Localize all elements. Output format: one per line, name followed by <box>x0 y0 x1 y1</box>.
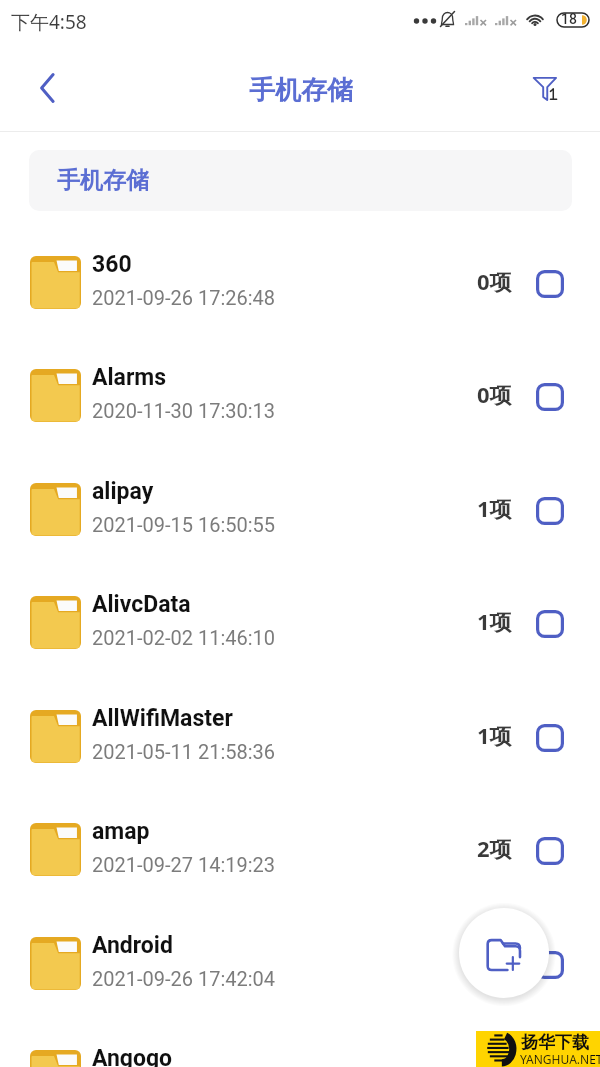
button[interactable]: Select folder <box>536 383 564 411</box>
staticText: 1项 <box>477 1060 512 1067</box>
staticText: 2021-02-02 11:46:10 <box>92 626 276 649</box>
staticText: YANGHUA.NET <box>520 1051 600 1067</box>
staticText: 2020-11-30 17:30:13 <box>92 399 276 422</box>
staticText: 2021-09-27 14:19:23 <box>92 853 276 876</box>
button[interactable]: Select folder <box>536 724 564 752</box>
button[interactable]: Alarms <box>0 341 600 454</box>
staticText: 2021-05-11 21:58:36 <box>92 740 276 763</box>
staticText: 0项 <box>477 266 512 296</box>
staticText: 扬华下载 <box>521 1032 589 1053</box>
button[interactable]: Select folder <box>536 837 564 865</box>
button[interactable]: Select folder <box>536 610 564 638</box>
staticText: Alarms <box>92 364 167 391</box>
staticText: Android <box>92 932 173 959</box>
staticText: 18 <box>561 11 577 27</box>
button[interactable]: alipay <box>0 455 600 568</box>
button[interactable]: AllWifiMaster <box>0 682 600 795</box>
staticText: 1项 <box>477 606 512 636</box>
staticText: 2021-09-26 17:26:48 <box>92 286 276 309</box>
staticText: Angogo <box>92 1045 173 1067</box>
staticText: amap <box>92 818 150 845</box>
button[interactable]: Back <box>23 63 73 113</box>
staticText: 2项 <box>477 833 512 863</box>
staticText: 0项 <box>477 379 512 409</box>
button[interactable]: AlivcData <box>0 568 600 681</box>
button[interactable]: Android <box>0 909 600 1022</box>
button[interactable]: Select folder <box>536 270 564 298</box>
staticText: 1项 <box>477 720 512 750</box>
staticText: AllWifiMaster <box>92 705 233 732</box>
staticText: 2021-09-15 16:50:55 <box>92 513 276 536</box>
staticText: 手机存储 <box>57 166 149 195</box>
staticText: 2021-09-26 17:42:04 <box>92 967 276 990</box>
button[interactable]: Select folder <box>536 951 564 979</box>
staticText: alipay <box>92 478 154 505</box>
staticText: 1项 <box>477 493 512 523</box>
button[interactable]: New folder <box>459 908 549 998</box>
button[interactable]: 360 <box>0 228 600 341</box>
button[interactable]: Select folder <box>536 497 564 525</box>
button[interactable]: 手机存储 <box>29 150 572 211</box>
staticText: AlivcData <box>92 591 191 618</box>
staticText: 下午4:58 <box>11 9 87 35</box>
button[interactable]: Angogo <box>0 1022 600 1067</box>
button[interactable]: amap <box>0 795 600 908</box>
button[interactable]: Filter <box>522 64 570 112</box>
staticText: 360 <box>92 251 132 278</box>
staticText: 1项 <box>477 947 512 977</box>
staticText: 手机存储 <box>249 74 353 107</box>
